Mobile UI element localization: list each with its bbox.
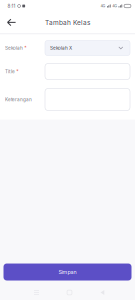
staticText: Sekolah bbox=[5, 45, 23, 51]
staticText: Sekolah X bbox=[50, 45, 72, 51]
staticText: Simpan bbox=[58, 269, 76, 275]
button[interactable]: Simpan bbox=[3, 263, 131, 280]
staticText: * bbox=[24, 45, 26, 51]
staticText: * bbox=[16, 69, 18, 74]
staticText: 4G bbox=[112, 4, 117, 8]
button[interactable]: Sekolah X bbox=[45, 40, 130, 55]
button[interactable] bbox=[45, 88, 130, 110]
staticText: 4G bbox=[101, 4, 106, 8]
button[interactable]: Back bbox=[0, 12, 23, 33]
button[interactable] bbox=[45, 63, 130, 79]
staticText: 8:11 bbox=[7, 3, 15, 9]
staticText: Keterangan bbox=[5, 97, 32, 102]
staticText: Tambah Kelas bbox=[45, 18, 90, 26]
staticText: Title bbox=[5, 69, 15, 74]
